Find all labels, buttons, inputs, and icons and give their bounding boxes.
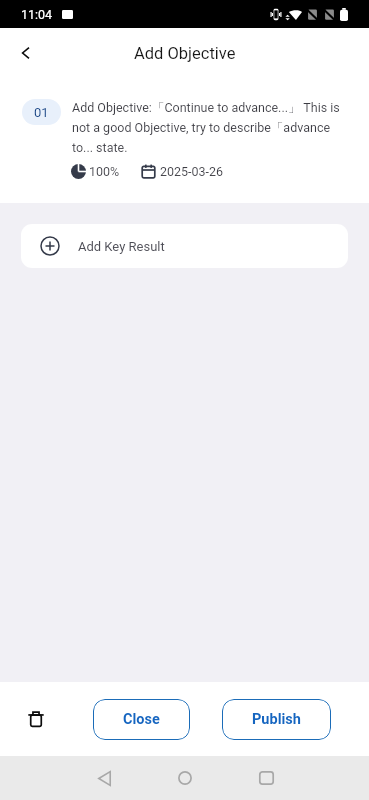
staticText: Close: [123, 711, 160, 728]
staticText: 01: [34, 105, 49, 120]
button[interactable]: Home: [163, 756, 207, 800]
button[interactable]: Publish: [222, 699, 331, 740]
button[interactable]: Back: [82, 756, 126, 800]
staticText: Publish: [252, 711, 301, 728]
staticText: 2025-03-26: [160, 164, 224, 179]
staticText: 100%: [89, 164, 120, 179]
button[interactable]: Close: [93, 699, 190, 740]
staticText: 11:04: [21, 7, 53, 22]
staticText: Add Objective:「Continue to advance...」 T…: [72, 100, 348, 155]
button[interactable]: Add Key Result: [21, 224, 348, 268]
staticText: Add Objective: [134, 44, 236, 63]
button[interactable]: Back: [0, 28, 50, 78]
staticText: Add Key Result: [78, 239, 165, 254]
button[interactable]: Delete: [14, 697, 58, 741]
button[interactable]: Recent apps: [244, 756, 288, 800]
